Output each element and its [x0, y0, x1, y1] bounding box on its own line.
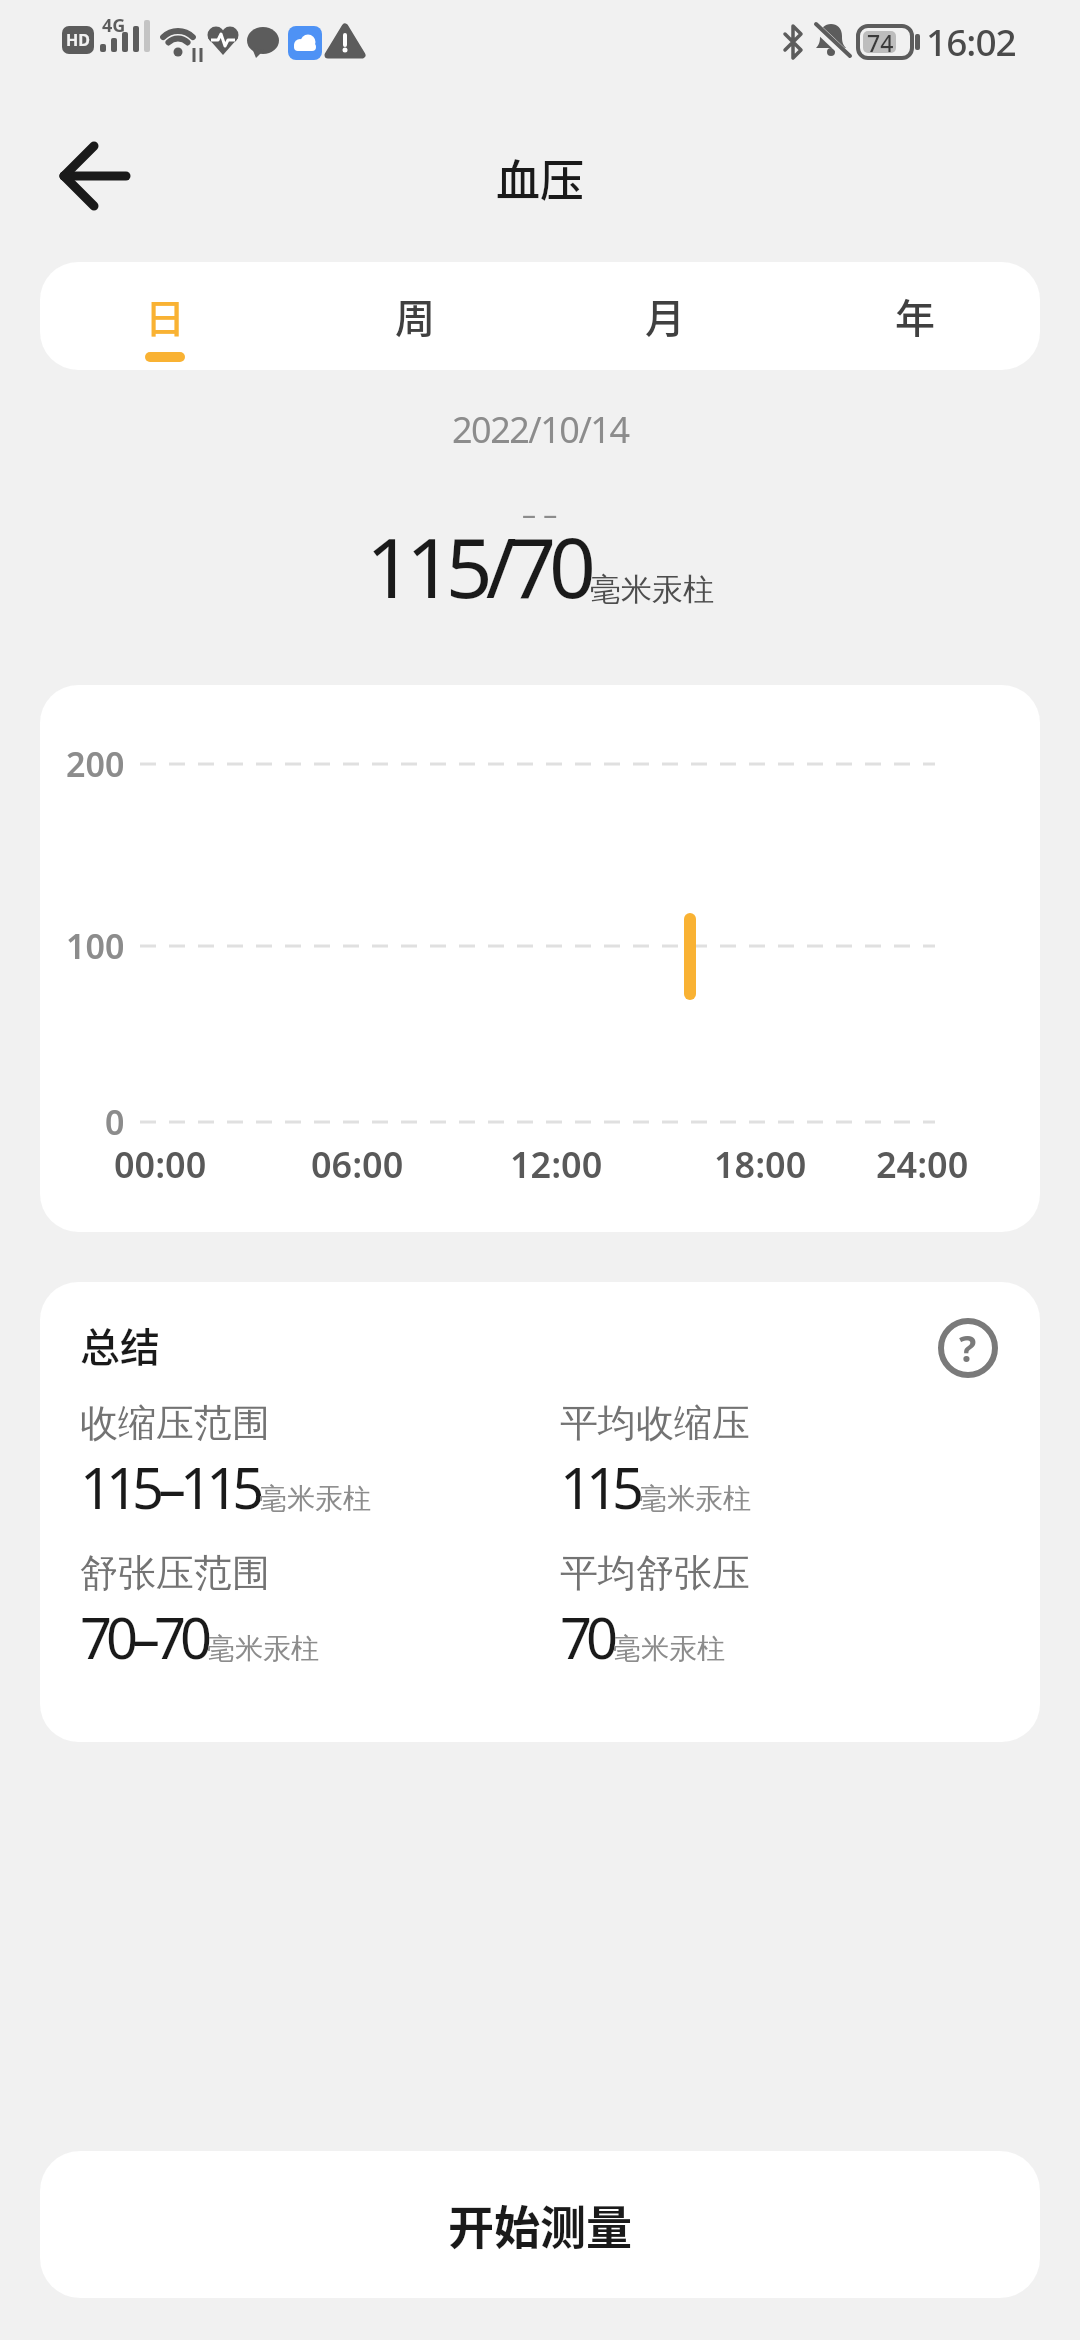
- staticText: 100: [66, 923, 125, 969]
- staticText: 24:00: [876, 1140, 969, 1189]
- staticText: 日: [145, 287, 185, 345]
- staticText: 4G: [102, 13, 126, 38]
- staticText: 16:02: [926, 16, 1016, 66]
- staticText: 毫米汞柱: [613, 1631, 725, 1666]
- staticText: 70: [560, 1599, 613, 1675]
- staticText: 年: [895, 287, 935, 345]
- staticText: 血压: [496, 146, 584, 206]
- staticText: 毫米汞柱: [207, 1631, 319, 1666]
- button[interactable]: [56, 140, 132, 212]
- staticText: 70–70: [80, 1599, 207, 1675]
- button[interactable]: 周: [290, 262, 540, 370]
- button[interactable]: 月: [540, 262, 790, 370]
- staticText: 毫米汞柱: [259, 1481, 371, 1516]
- staticText: 毫米汞柱: [639, 1481, 751, 1516]
- staticText: 平均舒张压: [560, 1549, 750, 1597]
- staticText: – –: [522, 494, 558, 532]
- staticText: 74: [867, 27, 894, 58]
- staticText: ?: [959, 1324, 977, 1373]
- staticText: 开始测量: [448, 2191, 632, 2258]
- staticText: 毫米汞柱: [590, 570, 714, 609]
- staticText: 舒张压范围: [80, 1549, 270, 1597]
- staticText: 115/70: [366, 510, 590, 622]
- staticText: 200: [66, 741, 125, 787]
- staticText: 12:00: [510, 1140, 603, 1189]
- staticText: 周: [395, 287, 435, 345]
- button[interactable]: 日: [40, 262, 290, 370]
- button[interactable]: [936, 1316, 1000, 1380]
- button[interactable]: 开始测量: [40, 2151, 1040, 2298]
- staticText: 115–115: [80, 1449, 259, 1525]
- staticText: HD: [66, 29, 90, 51]
- staticText: 收缩压范围: [80, 1399, 270, 1447]
- staticText: 月: [645, 287, 685, 345]
- button[interactable]: 年: [790, 262, 1040, 370]
- staticText: 00:00: [114, 1140, 207, 1189]
- staticText: 06:00: [311, 1140, 404, 1189]
- staticText: 0: [105, 1099, 125, 1145]
- staticText: 2022/10/14: [452, 405, 629, 454]
- staticText: 115: [560, 1449, 639, 1525]
- staticText: 总结: [80, 1316, 160, 1368]
- staticText: 平均收缩压: [560, 1399, 750, 1447]
- staticText: 18:00: [714, 1140, 807, 1189]
